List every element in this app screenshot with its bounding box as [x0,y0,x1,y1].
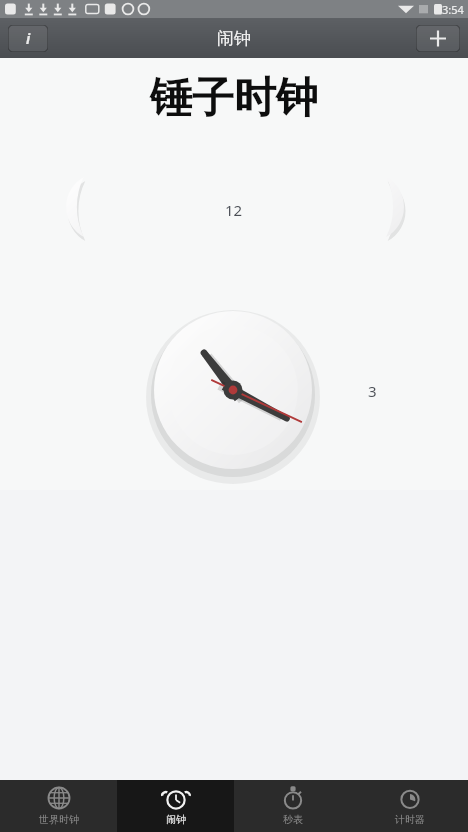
staticText: 12 [225,200,243,220]
staticText: 3 [368,381,377,401]
button[interactable]: 秒表 [234,780,351,832]
staticText: i [26,29,31,48]
button[interactable]: 计时器 [351,780,468,832]
staticText: 闹钟 [166,813,186,826]
button[interactable]: 闹钟 [117,780,234,832]
staticText: 秒表 [283,813,303,826]
staticText: 锤子时钟 [150,72,318,125]
button[interactable]: 世界时钟 [0,780,117,832]
staticText: 计时器 [395,813,425,826]
staticText: 世界时钟 [39,813,79,826]
staticText: 闹钟 [217,28,251,49]
button[interactable]: Info [8,25,48,52]
button[interactable]: Add alarm [416,25,460,52]
staticText: 3:54 [442,2,464,17]
